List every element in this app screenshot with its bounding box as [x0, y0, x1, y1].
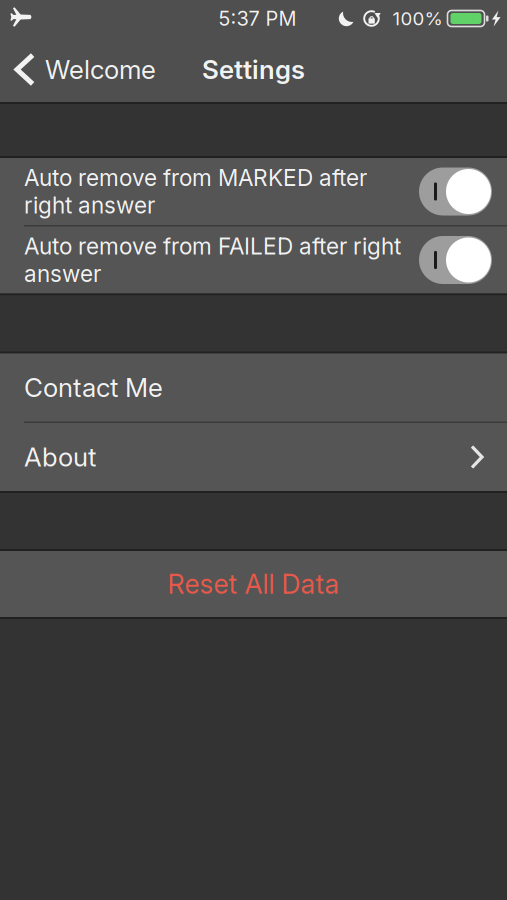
staticText: Settings — [202, 54, 305, 85]
button[interactable]: About — [0, 423, 507, 491]
staticText: Reset All Data — [167, 568, 339, 600]
staticText: Auto remove from MARKED after right answ… — [24, 164, 367, 219]
button[interactable]: Contact Me — [0, 353, 507, 421]
staticText: Auto remove from FAILED after right answ… — [24, 233, 401, 287]
button[interactable]: Back to Welcome — [0, 43, 166, 95]
staticText: Welcome — [45, 54, 156, 85]
staticText: 100% — [392, 7, 442, 30]
button[interactable]: Auto remove from MARKED after right answ… — [0, 158, 507, 225]
button[interactable]: Reset All Data — [0, 551, 507, 617]
staticText: Contact Me — [24, 372, 163, 403]
staticText: 5:37 PM — [218, 6, 296, 31]
staticText: About — [24, 441, 96, 473]
button[interactable]: Auto remove from FAILED after right answ… — [0, 226, 507, 293]
